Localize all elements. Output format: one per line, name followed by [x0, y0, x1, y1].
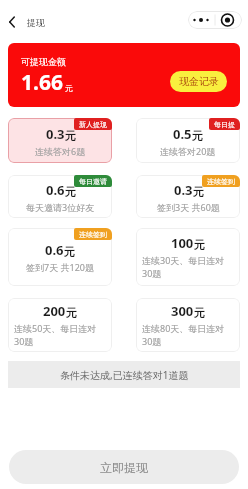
staticText: 连续30天、每日连对30题 — [142, 254, 234, 280]
staticText: 连续80天、每日连对30题 — [142, 322, 234, 348]
button[interactable]: Back — [3, 13, 21, 31]
staticText: 可提现金额 — [21, 56, 66, 67]
staticText: 提现 — [27, 17, 45, 28]
staticText: 新人提现 — [79, 120, 107, 129]
staticText: 条件未达成,已连续答对1道题 — [60, 368, 189, 382]
staticText: 200 — [43, 302, 66, 320]
staticText: 连续答对20题 — [160, 145, 216, 157]
button[interactable]: 0.6 — [8, 228, 112, 286]
staticText: 元 — [194, 306, 205, 320]
staticText: 连续签到 — [207, 177, 235, 186]
staticText: 元 — [193, 185, 204, 199]
staticText: 元 — [65, 129, 76, 143]
staticText: 现金记录 — [179, 75, 219, 88]
staticText: 连续50天、每日连对30题 — [14, 322, 106, 348]
button[interactable]: 0.3 — [8, 118, 112, 163]
staticText: 0.6 — [45, 241, 64, 259]
staticText: 每日提 — [214, 120, 235, 129]
button[interactable]: 现金记录 — [170, 71, 227, 92]
button[interactable]: 立即提现 — [9, 450, 239, 484]
staticText: 元 — [192, 129, 203, 143]
button[interactable]: 300 — [136, 298, 240, 352]
staticText: 0.5 — [173, 125, 192, 143]
staticText: 1.66 — [21, 68, 63, 97]
staticText: 元 — [65, 83, 73, 93]
staticText: 100 — [171, 234, 194, 252]
button[interactable]: 0.3 — [136, 175, 240, 218]
staticText: 300 — [171, 302, 194, 320]
staticText: 签到7天 共120题 — [26, 261, 94, 273]
staticText: 0.6 — [46, 181, 65, 199]
staticText: 连续签到 — [79, 230, 107, 239]
staticText: 0.3 — [46, 125, 65, 143]
button[interactable]: More — [188, 11, 242, 29]
button[interactable]: 0.5 — [136, 118, 240, 163]
button[interactable]: 100 — [136, 228, 240, 286]
staticText: 签到3天 共60题 — [157, 201, 220, 213]
staticText: 元 — [194, 238, 205, 252]
staticText: 连续答对6题 — [35, 145, 86, 157]
staticText: 立即提现 — [100, 460, 148, 475]
staticText: 每日邀请 — [79, 177, 107, 186]
staticText: 元 — [65, 185, 76, 199]
button[interactable]: 200 — [8, 298, 112, 352]
staticText: 元 — [66, 306, 77, 320]
staticText: 元 — [64, 245, 75, 259]
staticText: 每天邀请3位好友 — [26, 201, 95, 213]
button[interactable]: 0.6 — [8, 175, 112, 218]
staticText: 0.3 — [174, 181, 193, 199]
